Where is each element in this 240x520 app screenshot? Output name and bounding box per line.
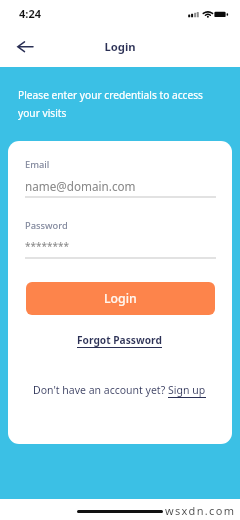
staticText: Sign up [168,383,206,397]
staticText: wsxdn.com [165,503,236,518]
staticText: Don't have an account yet? [33,383,168,397]
button[interactable]: Login [26,282,215,315]
staticText: ******** [25,239,70,253]
staticText: Forgot Password [77,333,162,347]
staticText: 4:24 [19,6,41,21]
button[interactable]: Forgot Password [77,333,162,347]
button[interactable]: Password [25,217,216,259]
button[interactable]: Back [6,33,44,61]
staticText: name@domain.com [25,178,136,194]
staticText: Password [25,219,68,232]
staticText: Login [104,290,137,307]
button[interactable]: Email [25,155,216,197]
button[interactable]: Sign up [168,383,206,397]
staticText: Please enter your credentials to access … [18,88,219,120]
staticText: Login [0,39,240,54]
staticText: Email [25,158,50,171]
